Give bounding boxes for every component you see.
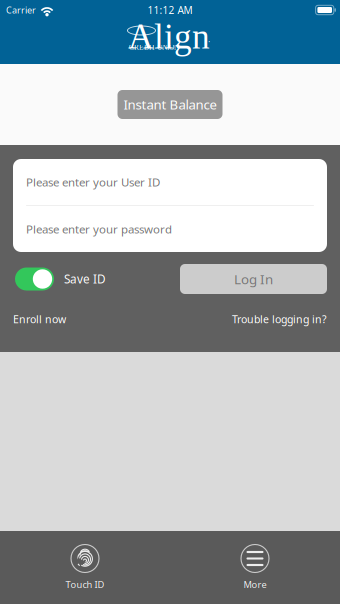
button[interactable]: Please enter your User ID [13, 159, 327, 205]
button[interactable]: Trouble logging in? [232, 312, 327, 326]
staticText: More [243, 578, 266, 591]
button[interactable]: Instant Balance [117, 90, 222, 119]
staticText: Carrier [6, 4, 36, 16]
staticText: Save ID [64, 271, 106, 287]
button[interactable]: Please enter your password [13, 206, 327, 252]
staticText: 11:12 AM [147, 3, 192, 17]
staticText: . [208, 34, 210, 44]
button[interactable]: Touch ID [0, 544, 170, 591]
staticText: CREDIT UNION [129, 43, 179, 51]
staticText: Log In [234, 270, 273, 288]
button[interactable]: Save ID [15, 267, 106, 290]
staticText: Please enter your User ID [26, 174, 160, 190]
button[interactable]: Enroll now [13, 312, 66, 326]
button[interactable]: More [170, 544, 340, 591]
staticText: Touch ID [65, 578, 104, 591]
button[interactable]: Log In [180, 264, 327, 294]
staticText: Please enter your password [26, 221, 172, 237]
staticText: Align [128, 17, 210, 56]
staticText: Enroll now [13, 312, 66, 326]
staticText: Trouble logging in? [232, 312, 327, 326]
staticText: Instant Balance [123, 95, 216, 113]
